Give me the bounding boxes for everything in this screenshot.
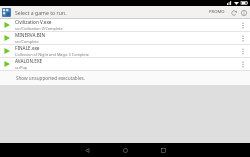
staticText: FINALE.exe: [15, 45, 40, 51]
button[interactable]: More options: [238, 32, 248, 44]
staticText: src/Complete: [15, 39, 39, 44]
button[interactable]: App icon: [2, 8, 11, 17]
button[interactable]: Show unsupported executables.: [0, 71, 250, 85]
staticText: PROMO: [209, 9, 225, 15]
staticText: scrPup: [15, 65, 28, 70]
button[interactable]: Back: [80, 143, 94, 157]
button[interactable]: More options: [238, 45, 248, 57]
button[interactable]: FINALE.exe: [0, 45, 250, 57]
button[interactable]: MINERVA.BIN: [0, 32, 250, 44]
button[interactable]: Civilization V.exe: [0, 19, 250, 31]
staticText: Show unsupported executables.: [16, 75, 85, 81]
staticText: MINERVA.BIN: [15, 32, 45, 38]
staticText: src/Civilization V/Complete: [15, 26, 63, 31]
staticText: Civilization V.exe: [15, 19, 52, 25]
button[interactable]: Home: [118, 143, 132, 157]
staticText: Collection of Night and Magic 3 Complete: [15, 52, 89, 57]
button[interactable]: Refresh: [229, 8, 238, 17]
button[interactable]: PROMO: [208, 8, 226, 16]
button[interactable]: Recent apps: [156, 143, 170, 157]
button[interactable]: More options: [238, 58, 248, 70]
button[interactable]: More options: [238, 19, 248, 31]
staticText: AVALON.EXE: [15, 58, 43, 64]
staticText: Select a game to run.: [15, 9, 67, 16]
button[interactable]: Help: [239, 8, 248, 17]
button[interactable]: AVALON.EXE: [0, 58, 250, 70]
